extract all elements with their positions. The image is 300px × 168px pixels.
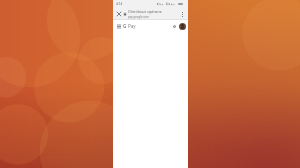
staticText: Pay [128,23,136,29]
button[interactable]: Checkout options [128,9,178,19]
button[interactable]: Account [179,23,186,30]
button[interactable]: Close [115,10,123,18]
button[interactable]: More options [178,10,186,18]
button[interactable]: Notifications [171,23,178,30]
staticText: pay.google.com [128,15,149,19]
button[interactable]: G [123,23,136,29]
button[interactable]: Menu [115,23,122,30]
staticText: Checkout options [128,9,162,15]
staticText: G [123,23,127,29]
staticText: 4:14 [116,2,123,6]
